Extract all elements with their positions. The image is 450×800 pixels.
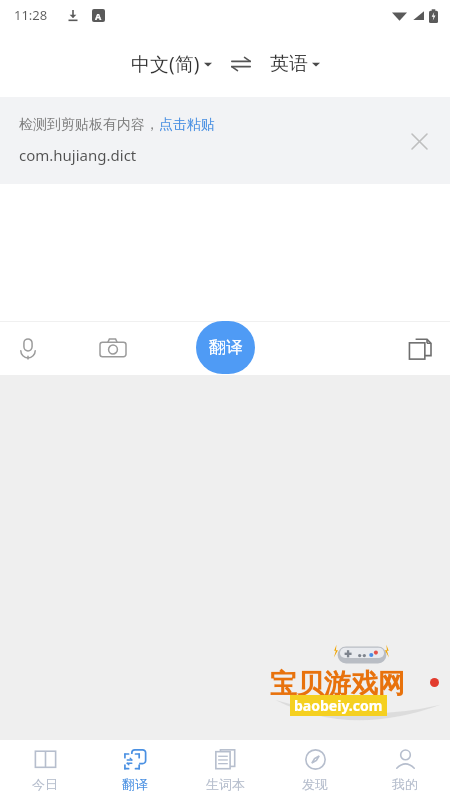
staticText: 翻译 (209, 337, 243, 358)
staticText: 我的 (392, 776, 418, 792)
button[interactable]: Voice input (6, 327, 50, 371)
button[interactable]: Copy (398, 327, 442, 371)
staticText: 生词本 (206, 776, 245, 792)
button[interactable]: Camera translate (91, 327, 135, 371)
staticText: 宝贝游戏网 (270, 667, 405, 701)
staticText: 今日 (32, 776, 58, 792)
button[interactable]: 点击粘贴 (159, 116, 215, 134)
staticText: 检测到剪贴板有内容， (19, 116, 159, 134)
button[interactable]: 中文(简) (127, 47, 216, 81)
button[interactable]: Close (402, 124, 436, 158)
staticText: 中文(简) (131, 51, 200, 77)
button[interactable]: 我的 (360, 740, 450, 800)
staticText: 英语 (270, 52, 308, 76)
staticText: A (95, 10, 102, 22)
button[interactable]: 翻译 (196, 321, 255, 374)
button[interactable]: 生词本 (180, 740, 270, 800)
button[interactable]: 今日 (0, 740, 90, 800)
staticText: 发现 (302, 776, 328, 792)
button[interactable]: 英语 (266, 48, 324, 80)
staticText: 11:28 (14, 6, 48, 24)
button[interactable]: 发现 (270, 740, 360, 800)
staticText: baobeiy.com (294, 696, 383, 715)
staticText: 翻译 (122, 776, 148, 792)
staticText: com.hujiang.dict (19, 145, 137, 165)
button[interactable]: Swap languages (226, 49, 256, 79)
button[interactable]: 翻译 (90, 740, 180, 800)
button[interactable]: 检测到剪贴板有内容， (0, 97, 450, 184)
